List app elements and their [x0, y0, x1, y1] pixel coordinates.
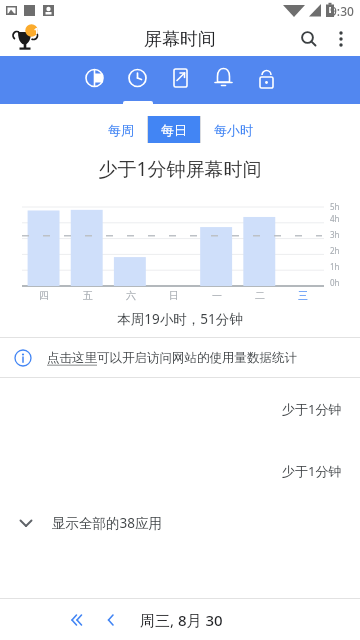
staticText: 点击这里 [47, 350, 97, 366]
button[interactable]: Usage pie [73, 56, 116, 104]
staticText: 可以开启访问网站的使用量数据统计 [97, 350, 297, 366]
staticText: 少于1分钟 [282, 400, 342, 418]
button[interactable]: Screen time [116, 56, 159, 104]
button[interactable]: 显示全部的38应用 [0, 502, 360, 544]
button[interactable]: Unlock [245, 56, 288, 104]
staticText: 日 [169, 289, 179, 302]
staticText: 每小时 [214, 122, 253, 138]
staticText: 2h [330, 245, 340, 256]
button[interactable]: Notifications [202, 56, 245, 104]
button[interactable]: Unlocks [159, 56, 202, 104]
button[interactable]: More options [326, 24, 356, 54]
staticText: 六 [126, 289, 136, 302]
button[interactable]: Previous week [62, 605, 92, 635]
button[interactable]: 少于1分钟 [0, 440, 360, 502]
staticText: 每日 [161, 122, 187, 138]
staticText: 4h [330, 213, 340, 224]
staticText: 本周19小时，51分钟 [0, 310, 360, 328]
button[interactable]: 少于1分钟 [0, 378, 360, 440]
staticText: 二 [255, 289, 265, 302]
staticText: 三 [298, 289, 308, 302]
button[interactable]: Search [292, 22, 326, 56]
staticText: 周三, [140, 610, 178, 630]
staticText: 显示全部的38应用 [52, 514, 162, 532]
staticText: 屏幕时间 [144, 28, 216, 51]
button[interactable]: Previous day [96, 605, 126, 635]
staticText: 1h [330, 261, 340, 272]
button[interactable]: 每周 [95, 116, 147, 143]
staticText: 一 [212, 289, 222, 302]
staticText: 少于1分钟屏幕时间 [0, 156, 360, 182]
staticText: 五 [83, 289, 93, 302]
staticText: 9:30 [330, 3, 354, 19]
button[interactable]: 每小时 [201, 116, 266, 143]
staticText: 3h [330, 229, 340, 240]
button[interactable]: Rewards [8, 22, 42, 56]
staticText: 少于1分钟 [282, 462, 342, 480]
staticText: 5h [330, 201, 340, 212]
staticText: 8月 30 [178, 610, 223, 630]
button[interactable]: 每日 [148, 116, 200, 143]
staticText: 1 [34, 25, 39, 36]
staticText: 四 [39, 289, 49, 302]
staticText: 0h [330, 277, 340, 288]
staticText: 每周 [108, 122, 134, 138]
button[interactable]: 点击这里 [0, 338, 360, 377]
